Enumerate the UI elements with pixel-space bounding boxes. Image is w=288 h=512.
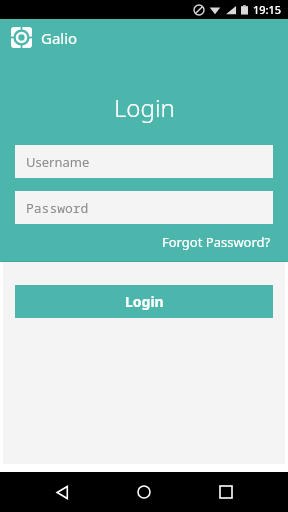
- other: Galio logo: [11, 27, 32, 48]
- staticText: Galio: [41, 28, 78, 48]
- button[interactable]: Username: [15, 145, 273, 178]
- button[interactable]: Forgot Password?: [160, 231, 273, 253]
- button[interactable]: Login: [15, 285, 273, 318]
- staticText: Forgot Password?: [162, 233, 271, 251]
- staticText: Password: [26, 199, 89, 217]
- staticText: Login: [125, 292, 164, 311]
- button[interactable]: Recent apps: [206, 472, 246, 512]
- staticText: Username: [26, 153, 90, 171]
- button[interactable]: Password: [15, 191, 273, 224]
- button[interactable]: Back: [42, 472, 82, 512]
- staticText: Login: [114, 91, 175, 124]
- staticText: 19:15: [253, 2, 282, 17]
- button[interactable]: Home: [124, 472, 164, 512]
